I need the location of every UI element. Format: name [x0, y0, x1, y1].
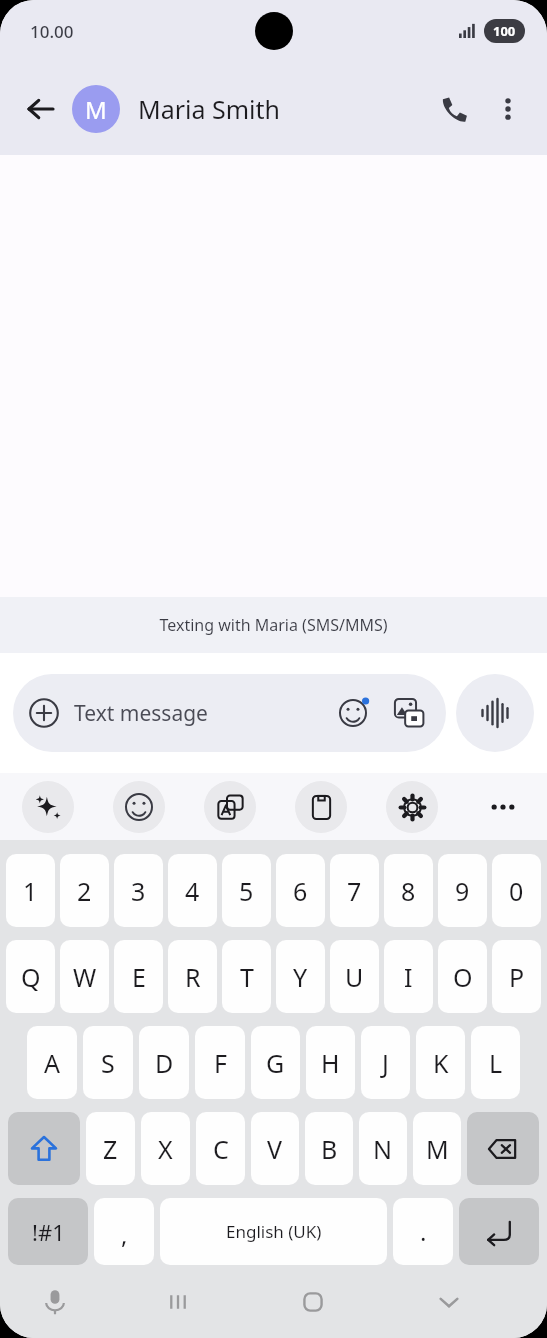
- staticText: X: [158, 1132, 173, 1166]
- button[interactable]: V: [251, 1112, 299, 1185]
- button[interactable]: Back: [14, 83, 66, 135]
- staticText: L: [489, 1046, 503, 1080]
- staticText: I: [404, 960, 413, 994]
- staticText: R: [185, 960, 201, 994]
- staticText: V: [267, 1132, 283, 1166]
- button[interactable]: English (UK): [160, 1198, 387, 1265]
- button[interactable]: Shift: [8, 1112, 80, 1185]
- button[interactable]: Home: [245, 1265, 381, 1338]
- button[interactable]: G: [251, 1026, 300, 1099]
- button[interactable]: Clipboard: [295, 781, 347, 833]
- button[interactable]: N: [359, 1112, 407, 1185]
- button[interactable]: ,: [94, 1198, 154, 1265]
- staticText: D: [155, 1046, 174, 1080]
- button[interactable]: R: [168, 940, 217, 1013]
- button[interactable]: P: [492, 940, 541, 1013]
- button[interactable]: Translate: [204, 781, 256, 833]
- staticText: M: [85, 93, 107, 126]
- staticText: English (UK): [226, 1220, 322, 1243]
- staticText: 3: [131, 874, 146, 908]
- button[interactable]: 8: [384, 854, 433, 927]
- button[interactable]: 2: [60, 854, 109, 927]
- button[interactable]: Y: [276, 940, 325, 1013]
- button[interactable]: 1: [6, 854, 55, 927]
- staticText: 100: [493, 22, 516, 40]
- staticText: B: [321, 1132, 338, 1166]
- staticText: ,: [121, 1218, 128, 1251]
- staticText: 7: [347, 874, 362, 908]
- button[interactable]: M: [72, 85, 427, 133]
- button[interactable]: F: [195, 1026, 245, 1099]
- staticText: C: [213, 1132, 229, 1166]
- button[interactable]: Gallery: [388, 692, 430, 734]
- button[interactable]: Voice message: [456, 674, 534, 752]
- staticText: Z: [103, 1132, 118, 1166]
- button[interactable]: More options: [481, 82, 535, 136]
- staticText: O: [453, 960, 473, 994]
- button[interactable]: Text message: [13, 674, 446, 752]
- staticText: 8: [401, 874, 416, 908]
- staticText: M: [426, 1132, 449, 1166]
- button[interactable]: Call: [427, 82, 481, 136]
- staticText: !#1: [32, 1217, 65, 1247]
- staticText: J: [382, 1046, 389, 1080]
- button[interactable]: Voice input: [0, 1265, 110, 1338]
- staticText: G: [266, 1046, 285, 1080]
- button[interactable]: B: [305, 1112, 353, 1185]
- button[interactable]: Q: [6, 940, 55, 1013]
- staticText: Text message: [74, 699, 332, 728]
- staticText: 6: [293, 874, 308, 908]
- button[interactable]: H: [306, 1026, 355, 1099]
- button[interactable]: A: [27, 1026, 77, 1099]
- button[interactable]: S: [83, 1026, 133, 1099]
- button[interactable]: O: [438, 940, 487, 1013]
- button[interactable]: I: [384, 940, 433, 1013]
- button[interactable]: Emoji: [332, 692, 374, 734]
- button[interactable]: Recents: [110, 1265, 245, 1338]
- button[interactable]: !#1: [8, 1198, 88, 1265]
- staticText: Q: [21, 960, 41, 994]
- button[interactable]: 7: [330, 854, 379, 927]
- button[interactable]: Stickers: [113, 781, 165, 833]
- staticText: 2: [77, 874, 92, 908]
- button[interactable]: Settings: [386, 781, 438, 833]
- button[interactable]: 6: [276, 854, 325, 927]
- button[interactable]: .: [393, 1198, 453, 1265]
- staticText: T: [240, 960, 254, 994]
- button[interactable]: D: [139, 1026, 189, 1099]
- button[interactable]: U: [330, 940, 379, 1013]
- button[interactable]: Enter: [459, 1198, 539, 1265]
- button[interactable]: More: [477, 781, 529, 833]
- staticText: Maria Smith: [138, 92, 281, 126]
- button[interactable]: T: [222, 940, 271, 1013]
- staticText: H: [321, 1046, 340, 1080]
- button[interactable]: L: [471, 1026, 520, 1099]
- button[interactable]: K: [416, 1026, 465, 1099]
- staticText: Texting with Maria (SMS/MMS): [159, 614, 388, 636]
- staticText: P: [509, 960, 525, 994]
- button[interactable]: M: [413, 1112, 461, 1185]
- button[interactable]: Z: [86, 1112, 135, 1185]
- button[interactable]: 5: [222, 854, 271, 927]
- staticText: 9: [455, 874, 470, 908]
- button[interactable]: J: [361, 1026, 410, 1099]
- staticText: S: [101, 1046, 115, 1080]
- staticText: E: [132, 960, 146, 994]
- button[interactable]: Hide keyboard: [381, 1265, 517, 1338]
- button[interactable]: 0: [492, 854, 541, 927]
- button[interactable]: C: [196, 1112, 245, 1185]
- button[interactable]: 9: [438, 854, 487, 927]
- button[interactable]: Backspace: [467, 1112, 539, 1185]
- staticText: 1: [23, 874, 38, 908]
- staticText: 0: [509, 874, 524, 908]
- button[interactable]: Smart compose: [22, 781, 74, 833]
- button[interactable]: X: [141, 1112, 190, 1185]
- staticText: W: [73, 960, 97, 994]
- button[interactable]: W: [60, 940, 109, 1013]
- button[interactable]: 3: [114, 854, 163, 927]
- button[interactable]: E: [114, 940, 163, 1013]
- staticText: K: [433, 1046, 449, 1080]
- staticText: 4: [185, 874, 200, 908]
- button[interactable]: 4: [168, 854, 217, 927]
- staticText: F: [214, 1046, 227, 1080]
